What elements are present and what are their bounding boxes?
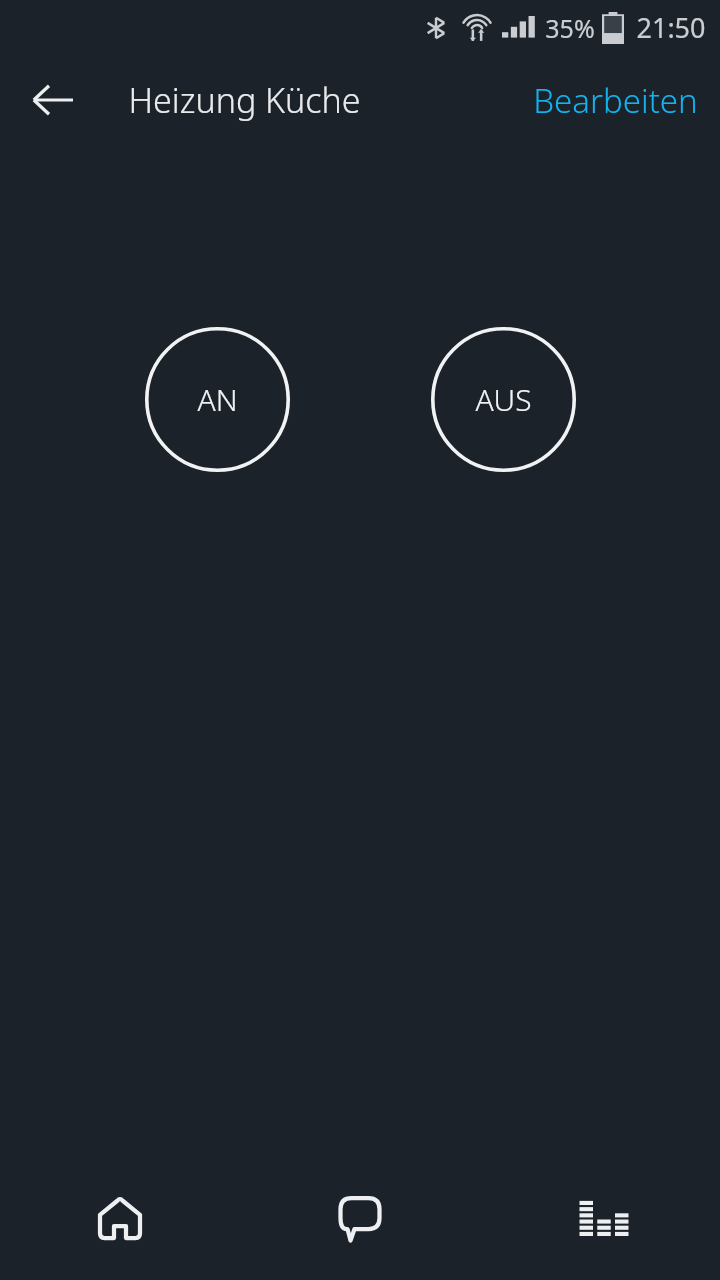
staticText: 21:50 [636,9,706,46]
staticText: Bearbeiten [533,78,698,123]
button[interactable]: Bearbeiten [511,66,720,135]
staticText: AN [197,379,238,420]
staticText: 35% [545,11,595,45]
button[interactable]: Zurück [22,69,84,131]
button[interactable]: Nachrichten [240,1155,480,1280]
button[interactable]: AN [145,327,290,472]
staticText: AUS [475,379,532,420]
staticText: Heizung Küche [128,77,361,123]
button[interactable]: AUS [431,327,576,472]
button[interactable]: Statistik [480,1155,720,1280]
button[interactable]: Start [0,1155,240,1280]
